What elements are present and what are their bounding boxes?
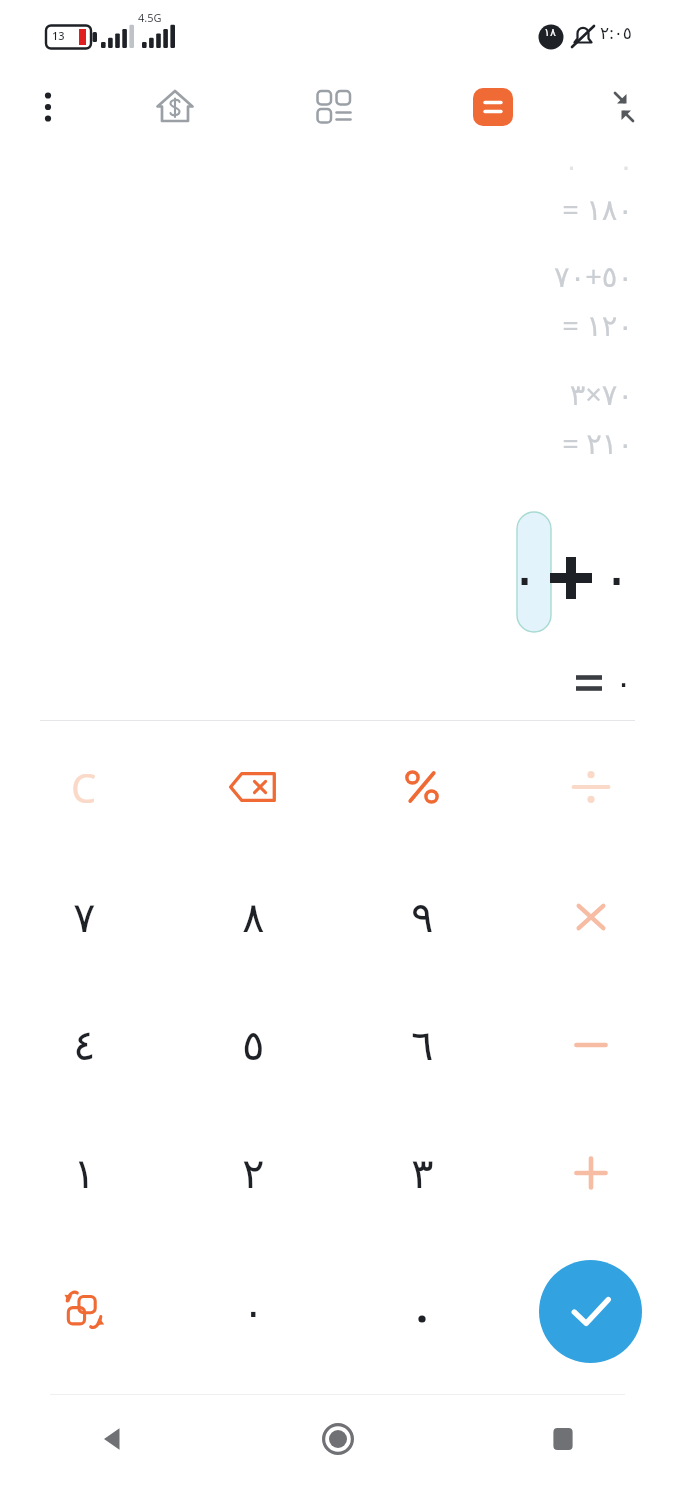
- staticText: ٥٠+٧٠: [554, 256, 633, 295]
- button[interactable]: Collapse: [598, 83, 646, 131]
- staticText: = ٢١٠: [562, 423, 633, 462]
- staticText: ٠: [601, 544, 633, 612]
- button[interactable]: ٨: [209, 873, 297, 961]
- staticText: ٧٠×٣: [569, 374, 633, 413]
- button[interactable]: ٣: [378, 1129, 466, 1217]
- button[interactable]: ٠: [209, 1267, 297, 1355]
- staticText: 13: [52, 28, 65, 43]
- staticText: = ١٢٠: [562, 305, 633, 344]
- button[interactable]: Percent: [378, 743, 466, 831]
- button[interactable]: [378, 1267, 466, 1355]
- staticText: ٨: [242, 893, 265, 942]
- staticText: ٥: [242, 1021, 265, 1070]
- button[interactable]: ٧: [40, 873, 128, 961]
- staticText: ١٨: [544, 26, 556, 39]
- button[interactable]: C: [40, 743, 128, 831]
- button[interactable]: Minus: [547, 1001, 635, 1089]
- button[interactable]: ٩: [378, 873, 466, 961]
- staticText: ٢:٠٥: [600, 21, 632, 44]
- staticText: ٢: [242, 1149, 265, 1198]
- staticText: ٩: [411, 893, 434, 942]
- button[interactable]: Equals: [473, 88, 513, 126]
- button[interactable]: Confirm: [539, 1260, 642, 1363]
- button[interactable]: Multiply: [547, 873, 635, 961]
- button[interactable]: ٥: [209, 1001, 297, 1089]
- staticText: C: [71, 760, 97, 814]
- staticText: ٤: [73, 1021, 96, 1070]
- button[interactable]: Grid: [310, 83, 358, 131]
- button[interactable]: ٢: [209, 1129, 297, 1217]
- staticText: ٠: [509, 544, 541, 612]
- staticText: = ١٨٠: [562, 189, 633, 228]
- button[interactable]: Home: [301, 1402, 375, 1476]
- staticText: ٧: [73, 893, 96, 942]
- staticText: ٠: [615, 664, 633, 701]
- staticText: ١: [73, 1149, 96, 1198]
- button[interactable]: Back: [76, 1402, 150, 1476]
- button[interactable]: ٦: [378, 1001, 466, 1089]
- button[interactable]: Home loan: [151, 83, 199, 131]
- button[interactable]: [517, 512, 551, 632]
- button[interactable]: ١: [40, 1129, 128, 1217]
- button[interactable]: Convert: [40, 1267, 128, 1355]
- button[interactable]: Backspace: [209, 743, 297, 831]
- button[interactable]: Recents: [526, 1402, 600, 1476]
- button[interactable]: More options: [24, 83, 72, 131]
- staticText: ٦: [411, 1021, 434, 1070]
- staticText: 4.5G: [138, 10, 162, 25]
- button[interactable]: ٤: [40, 1001, 128, 1089]
- button[interactable]: Plus: [547, 1129, 635, 1217]
- button[interactable]: Divide: [547, 743, 635, 831]
- staticText: ٠: [242, 1287, 265, 1336]
- staticText: ٣: [411, 1149, 434, 1198]
